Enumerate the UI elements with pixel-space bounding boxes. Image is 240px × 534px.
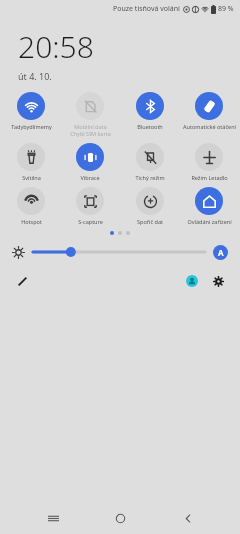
button[interactable]: Vibrace xyxy=(61,139,119,183)
staticText: Ovládání zařízení xyxy=(187,218,232,225)
button[interactable]: Auto brightness xyxy=(213,245,228,260)
button[interactable]: Recents xyxy=(38,503,68,533)
staticText: 20:58 xyxy=(18,26,94,67)
staticText: út 4. 10. xyxy=(18,70,52,82)
button[interactable]: Hotspot xyxy=(2,183,60,227)
button[interactable]: Back xyxy=(173,503,203,533)
button[interactable]: Home xyxy=(105,503,135,533)
staticText: Hotspot xyxy=(21,218,42,225)
button[interactable]: Settings xyxy=(210,273,226,289)
button[interactable]: Tichý režim xyxy=(121,139,179,183)
button[interactable]: Režim Letadlo xyxy=(180,139,238,183)
staticText: Tichý režim xyxy=(135,174,165,181)
staticText: S-capture xyxy=(78,218,103,225)
button[interactable]: Tadybydlímemy xyxy=(2,88,60,132)
button[interactable]: Automatické otáčení xyxy=(180,88,238,132)
staticText: Svítilna xyxy=(22,174,41,181)
button[interactable]: Ovládání zařízení xyxy=(180,183,238,227)
button[interactable]: S-capture xyxy=(61,183,119,227)
button[interactable]: Mobilní data xyxy=(61,88,119,139)
staticText: Vibrace xyxy=(80,174,100,181)
staticText: Režim Letadlo xyxy=(191,174,228,181)
staticText: A xyxy=(218,247,224,258)
staticText: 89 % xyxy=(218,4,234,14)
staticText: Automatické otáčení xyxy=(183,123,236,130)
button[interactable]: Account xyxy=(184,273,200,289)
staticText: Bluetooth xyxy=(137,123,163,130)
button[interactable]: Svítilna xyxy=(2,139,60,183)
button[interactable]: Spořič dat xyxy=(121,183,179,227)
staticText: Chybí SIM karta xyxy=(70,130,111,137)
button[interactable]: Edit xyxy=(14,273,30,289)
staticText: Tadybydlímemy xyxy=(11,123,52,130)
staticText: Pouze tísňová volání xyxy=(113,4,180,14)
button[interactable]: Bluetooth xyxy=(121,88,179,132)
staticText: Spořič dat xyxy=(137,218,163,225)
staticText: Mobilní data xyxy=(74,123,107,130)
